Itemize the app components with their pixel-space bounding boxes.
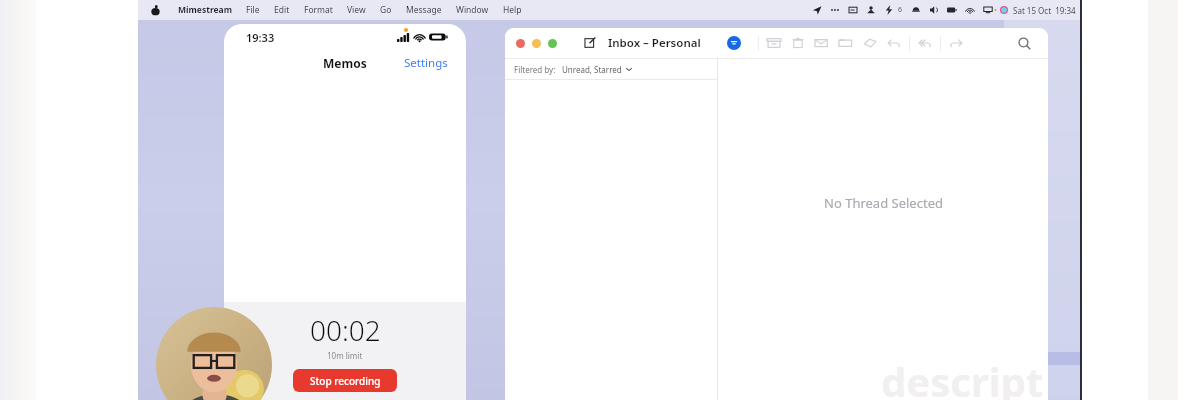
staticText: 6	[898, 5, 903, 15]
button[interactable]	[532, 39, 541, 48]
staticText: 10m limit	[327, 350, 363, 361]
staticText: n	[1008, 376, 1013, 385]
button[interactable]: Move	[834, 33, 858, 53]
staticText: Sat 15 Oct 19:34	[1013, 5, 1076, 16]
button[interactable]	[516, 39, 525, 48]
staticText: Help	[503, 4, 522, 16]
staticText: View	[347, 4, 366, 16]
staticText: Memos	[323, 55, 367, 71]
button[interactable]: Mark unread	[810, 33, 834, 53]
button[interactable]: Filter	[727, 36, 741, 50]
button[interactable]: Window	[449, 4, 496, 16]
staticText: Unread, Starred	[562, 64, 622, 75]
button[interactable]: Reply	[882, 33, 906, 53]
button[interactable]: Compose	[581, 34, 599, 52]
button[interactable]: Reply all	[913, 33, 937, 53]
button[interactable]	[548, 39, 557, 48]
button[interactable]: Filtered by:	[505, 59, 717, 79]
button[interactable]: Menu bar item	[844, 5, 862, 15]
staticText: Filtered by:	[514, 64, 556, 75]
staticText: Format	[304, 4, 333, 16]
staticText: Message	[406, 4, 442, 16]
button[interactable]: Menu bar item	[961, 5, 979, 15]
staticText: 19:33	[246, 30, 275, 45]
button[interactable]: Menu bar item	[907, 5, 925, 15]
button[interactable]: Menu bar item	[826, 5, 844, 15]
button[interactable]: Menu bar item	[862, 5, 880, 15]
button[interactable]: Mimestream	[171, 4, 239, 16]
staticText: File	[246, 4, 260, 16]
button[interactable]: Edit	[267, 4, 297, 16]
staticText: 00:02	[310, 311, 381, 349]
button[interactable]: Menu bar item	[808, 5, 826, 15]
staticText: Stop recording	[310, 374, 381, 388]
button[interactable]: File	[239, 4, 267, 16]
staticText: Inbox – Personal	[608, 35, 701, 51]
button[interactable]: Search	[1015, 34, 1034, 53]
staticText: Settings	[404, 55, 448, 71]
button[interactable]: Stop recording	[293, 369, 397, 392]
button[interactable]: Help	[496, 4, 529, 16]
button[interactable]: Settings	[386, 51, 466, 75]
button[interactable]: Menu bar item	[979, 5, 997, 15]
button[interactable]: Format	[297, 4, 340, 16]
button[interactable]: Menu bar item	[943, 5, 961, 15]
staticText: No Thread Selected	[824, 194, 943, 212]
staticText: Mimestream	[178, 4, 232, 16]
button[interactable]: Forward	[944, 33, 968, 53]
staticText: Edit	[274, 4, 290, 16]
button[interactable]: Archive	[762, 33, 786, 53]
button[interactable]: Menu bar item	[925, 5, 943, 15]
button[interactable]: Delete	[786, 33, 810, 53]
button[interactable]: Go	[373, 4, 399, 16]
button[interactable]: Menu bar item	[880, 5, 898, 15]
staticText: Go	[380, 4, 392, 16]
staticText: descript	[881, 354, 1044, 400]
staticText: Window	[456, 4, 489, 16]
button[interactable]: Label	[858, 33, 882, 53]
button[interactable]: View	[340, 4, 373, 16]
button[interactable]: Message	[399, 4, 449, 16]
